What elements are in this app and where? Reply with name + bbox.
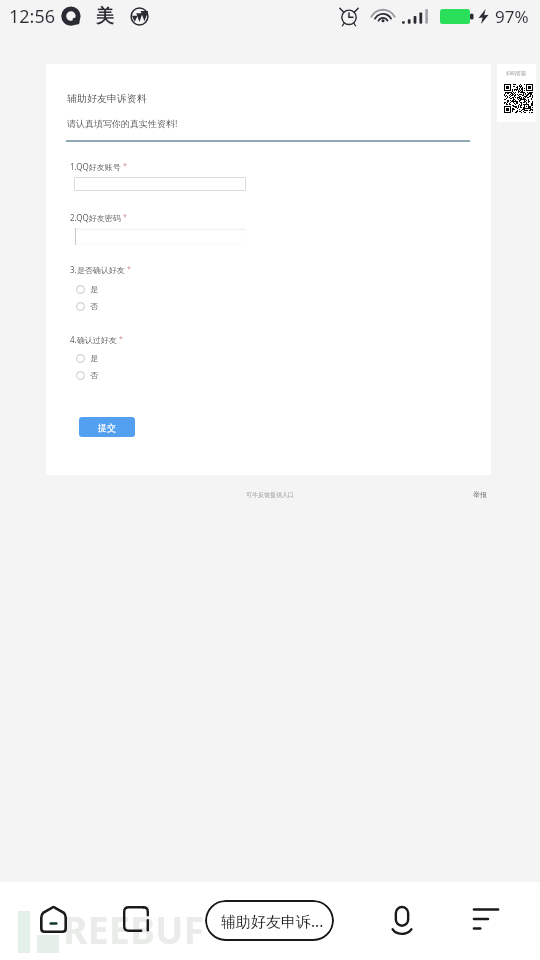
staticText: 是 — [90, 353, 98, 363]
staticText: 举报 — [473, 490, 487, 499]
staticText: 1.QQ好友账号 — [70, 161, 121, 172]
button[interactable]: Menu — [466, 899, 506, 939]
staticText: 请认真填写你的真实性资料! — [67, 117, 178, 129]
button[interactable]: 提交 — [79, 417, 135, 437]
staticText: 否 — [90, 301, 98, 311]
staticText: 扫码答题 — [506, 70, 526, 76]
staticText: 2.QQ好友密码 — [70, 212, 121, 223]
button[interactable]: Tabs — [116, 899, 156, 939]
staticText: 12:56 — [9, 4, 56, 29]
button[interactable]: 否 — [76, 370, 98, 380]
staticText: 4.确认过好友 — [70, 334, 117, 345]
button[interactable] — [74, 228, 246, 245]
staticText: 美 — [96, 5, 114, 28]
staticText: * — [123, 161, 127, 171]
button[interactable] — [74, 177, 246, 191]
staticText: REEBUF — [63, 904, 205, 954]
staticText: 可牛反馈提供入口 — [246, 491, 294, 499]
button[interactable]: 否 — [76, 301, 98, 311]
staticText: * — [127, 264, 131, 274]
button[interactable]: Voice search — [382, 899, 422, 939]
button[interactable]: 举报 — [473, 490, 487, 499]
button[interactable]: 是 — [76, 284, 98, 294]
button[interactable]: Home — [33, 899, 73, 939]
button[interactable]: 辅助好友申诉... — [205, 900, 334, 941]
staticText: 辅助好友申诉资料 — [67, 92, 147, 105]
staticText: * — [123, 212, 127, 222]
staticText: 辅助好友申诉... — [221, 911, 324, 931]
staticText: * — [119, 334, 123, 344]
staticText: 否 — [90, 370, 98, 380]
staticText: 提交 — [98, 422, 116, 433]
staticText: 3.是否确认好友 — [70, 264, 125, 275]
staticText: 是 — [90, 284, 98, 294]
staticText: 97% — [495, 5, 529, 28]
button[interactable]: 是 — [76, 353, 98, 363]
